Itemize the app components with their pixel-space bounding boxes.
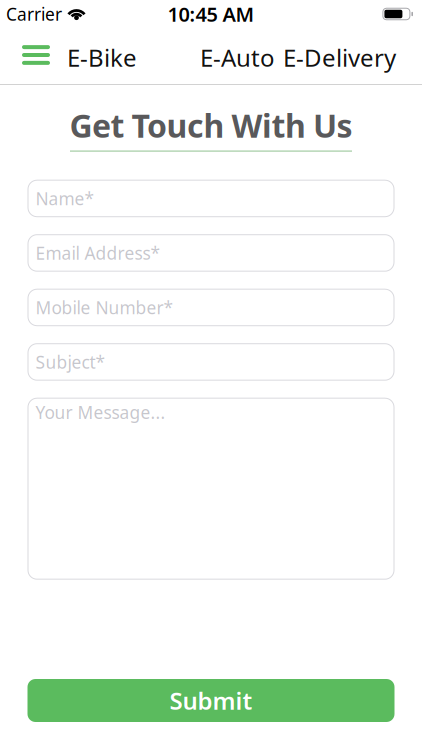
staticText: Get Touch With Us (69, 104, 352, 146)
staticText: Subject* (35, 350, 105, 373)
button[interactable]: Mobile Number* (27, 289, 394, 326)
staticText: Your Message... (35, 401, 165, 424)
staticText: Carrier (6, 2, 62, 25)
button[interactable]: Name* (27, 180, 394, 217)
button[interactable]: E-Auto (200, 42, 275, 73)
button[interactable]: Email Address* (27, 234, 394, 272)
button[interactable]: Menu (22, 45, 50, 65)
staticText: 10:45 AM (167, 1, 254, 27)
button[interactable]: Submit (27, 679, 394, 722)
staticText: Submit (169, 685, 252, 716)
button[interactable]: E-Bike (67, 42, 137, 73)
staticText: E-Bike (67, 42, 137, 73)
button[interactable]: E-Delivery (283, 42, 396, 73)
staticText: Email Address* (35, 241, 160, 264)
button[interactable]: Your Message (27, 398, 394, 580)
staticText: E-Auto (200, 42, 275, 73)
staticText: Mobile Number* (35, 296, 173, 319)
staticText: E-Delivery (283, 42, 396, 73)
button[interactable]: Subject* (27, 343, 394, 381)
staticText: Name* (35, 187, 94, 210)
